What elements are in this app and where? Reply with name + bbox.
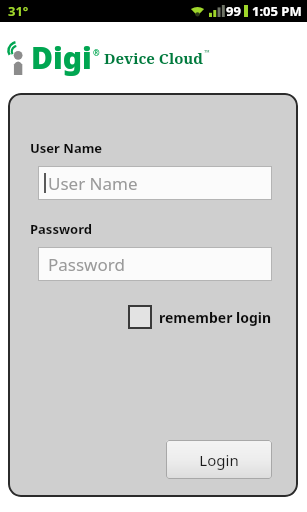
button[interactable]: User Name [38, 166, 272, 200]
button[interactable]: Password [38, 247, 272, 281]
staticText: ® [93, 47, 100, 58]
button[interactable]: Login [166, 440, 272, 479]
staticText: 99 [226, 2, 241, 20]
staticText: Digi [31, 37, 92, 78]
staticText: User Name [30, 139, 103, 157]
staticText: remember login [159, 308, 272, 327]
staticText: User Name [48, 172, 138, 195]
staticText: 31° [8, 2, 29, 20]
staticText: Password [30, 220, 92, 238]
staticText: Password [48, 253, 125, 276]
staticText: ™ [204, 48, 210, 58]
staticText: Device Cloud [104, 48, 204, 68]
staticText: 1:05 PM [252, 2, 302, 20]
staticText: Login [199, 450, 239, 470]
button[interactable]: remember login [128, 303, 272, 331]
